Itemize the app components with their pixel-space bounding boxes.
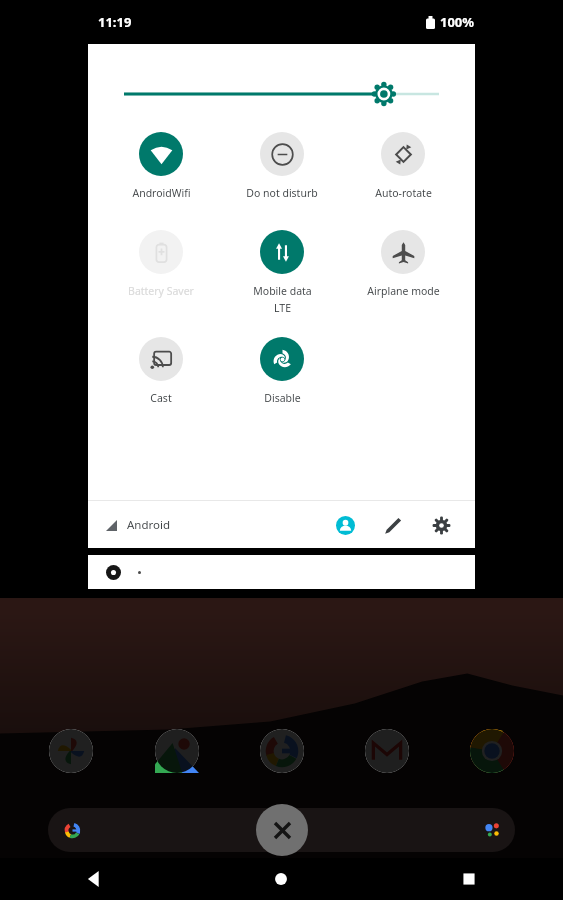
button[interactable]: Android	[106, 517, 171, 533]
staticText: 100%	[440, 13, 475, 31]
staticText: Auto-rotate	[375, 186, 432, 200]
staticText: Disable	[264, 391, 301, 405]
button[interactable]: Maps	[154, 728, 200, 774]
button[interactable]: Home	[187, 858, 375, 900]
button[interactable]: Settings	[425, 509, 457, 541]
button[interactable]: Photos	[48, 728, 94, 774]
staticText: Mobile data	[253, 284, 312, 298]
button[interactable]: Back	[0, 858, 187, 900]
button[interactable]: Mobile data	[231, 230, 333, 315]
button[interactable]: Google	[259, 728, 305, 774]
button[interactable]: Do not disturb	[231, 132, 333, 200]
button[interactable]: User	[329, 509, 361, 541]
button[interactable]: Cast	[110, 337, 212, 405]
staticText: Cast	[150, 391, 172, 405]
button[interactable]: Close	[256, 804, 308, 856]
button[interactable]: Gmail	[364, 728, 410, 774]
staticText: Do not disturb	[246, 186, 318, 200]
button[interactable]	[124, 82, 439, 106]
staticText: LTE	[274, 301, 291, 315]
staticText: 11:19	[98, 13, 132, 31]
staticText: AndroidWifi	[132, 186, 191, 200]
button[interactable]: Battery Saver	[110, 230, 212, 298]
staticText: Airplane mode	[367, 284, 440, 298]
button[interactable]: Auto-rotate	[352, 132, 454, 200]
button[interactable]: Airplane mode	[352, 230, 454, 298]
button[interactable]: Edit	[377, 509, 409, 541]
button[interactable]: Disable	[231, 337, 333, 405]
staticText: Android	[127, 517, 171, 533]
button[interactable]: AndroidWifi	[110, 132, 212, 200]
button[interactable]	[88, 555, 475, 589]
button[interactable]	[48, 808, 515, 852]
button[interactable]: Chrome	[469, 728, 515, 774]
button[interactable]: Recents	[375, 858, 563, 900]
staticText: Battery Saver	[128, 284, 194, 298]
